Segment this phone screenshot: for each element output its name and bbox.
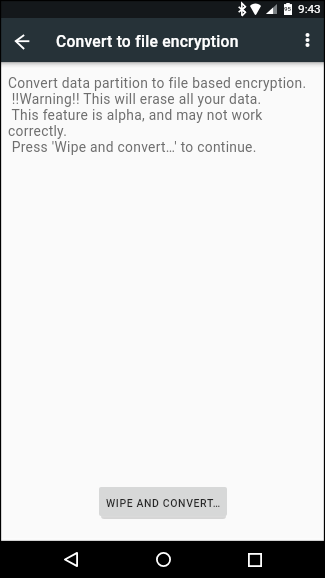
staticText: correctly.	[8, 123, 68, 139]
staticText: 9:43	[298, 2, 321, 16]
staticText: WIPE AND CONVERT…	[106, 497, 221, 509]
button[interactable]: WIPE AND CONVERT…	[99, 487, 227, 516]
staticText: Convert to file encryption	[56, 33, 290, 51]
button[interactable]: More options	[290, 18, 325, 62]
staticText: !!Warning!! This will erase all your dat…	[8, 91, 262, 107]
button[interactable]: Back	[25, 541, 117, 578]
staticText: Press 'Wipe and convert…' to continue.	[8, 139, 257, 155]
button[interactable]: Navigate up	[0, 18, 45, 62]
staticText: Convert data partition to file based enc…	[8, 75, 307, 91]
button[interactable]: Recent apps	[209, 541, 301, 578]
button[interactable]: Home	[117, 541, 209, 578]
staticText: 95	[284, 5, 292, 12]
staticText: This feature is alpha, and may not work	[8, 107, 263, 123]
